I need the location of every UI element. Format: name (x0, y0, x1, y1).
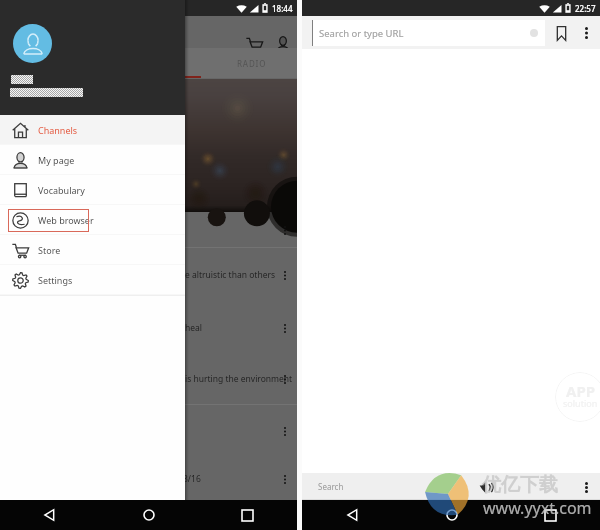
staticText: e altruistic than others (185, 269, 276, 281)
staticText: is hurting the environment (185, 373, 293, 385)
button[interactable]: Search (318, 481, 344, 492)
staticText: www.yyxt.com (483, 497, 592, 519)
staticText: Store (38, 244, 61, 256)
staticText: APP (566, 381, 596, 401)
button[interactable]: Back (0, 500, 99, 530)
button[interactable]: Home (402, 500, 501, 530)
button[interactable]: More options (278, 268, 292, 282)
button[interactable]: 3/16 (0, 457, 297, 500)
button[interactable]: More options (0, 405, 297, 457)
staticText: 3/16 (183, 473, 201, 485)
button[interactable]: heal (0, 302, 297, 353)
button[interactable]: RADIO (0, 48, 297, 78)
staticText: Web browser (38, 214, 94, 226)
button[interactable]: Store (0, 235, 185, 265)
button[interactable]: Back (302, 500, 402, 530)
staticText: 18:44 (272, 3, 293, 14)
staticText: solution (563, 397, 598, 409)
staticText: Search or type URL (319, 27, 404, 40)
button[interactable]: Web browser (0, 205, 185, 235)
staticText: Vocabulary (38, 184, 85, 196)
button[interactable]: More options (278, 472, 292, 486)
button[interactable]: More options (278, 424, 292, 438)
button[interactable]: Settings (0, 265, 185, 295)
button[interactable]: My page (0, 145, 185, 175)
button[interactable]: Cart (239, 29, 269, 59)
button[interactable]: Home (99, 500, 198, 530)
button[interactable]: More options (0, 212, 297, 248)
staticText: 优亿下载 (482, 473, 558, 497)
button[interactable]: Voice search (474, 476, 496, 498)
button[interactable]: Profile picture (13, 24, 52, 63)
staticText: Settings (38, 274, 73, 286)
button[interactable]: More options (575, 476, 597, 498)
button[interactable]: Channels (0, 115, 185, 145)
button[interactable]: Account (268, 29, 298, 59)
button[interactable]: Vocabulary (0, 175, 185, 205)
button[interactable]: More options (575, 22, 597, 44)
staticText: My page (38, 154, 75, 166)
staticText: 22:57 (575, 3, 596, 14)
button[interactable]: Search or type URL (312, 20, 545, 46)
button[interactable]: e altruistic than others (0, 248, 297, 302)
button[interactable]: Recent apps (501, 500, 600, 530)
button[interactable]: More options (278, 223, 292, 237)
button[interactable]: More options (278, 321, 292, 335)
button[interactable]: Recent apps (198, 500, 297, 530)
staticText: Channels (38, 124, 78, 136)
button[interactable]: Bookmarks (547, 19, 575, 47)
button[interactable]: More options (278, 372, 292, 386)
staticText: RADIO (237, 58, 267, 69)
button[interactable]: is hurting the environment (0, 353, 297, 405)
staticText: heal (185, 322, 203, 334)
